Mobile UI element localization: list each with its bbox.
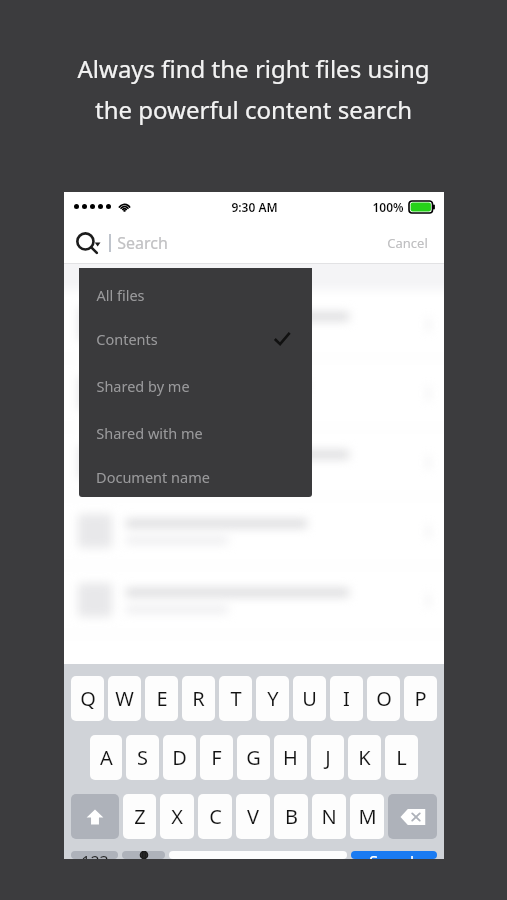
staticText: W	[115, 685, 134, 712]
other: Search scope	[75, 230, 101, 256]
button[interactable]: Z	[123, 794, 156, 839]
staticText: Y	[267, 685, 279, 712]
button[interactable]: Search	[351, 851, 437, 859]
button[interactable]: Change keyboard language	[122, 851, 165, 859]
button[interactable]: C	[198, 794, 232, 839]
staticText: S	[137, 744, 148, 771]
staticText: X	[171, 803, 183, 830]
staticText: 100%	[372, 199, 404, 215]
button[interactable]: B	[274, 794, 308, 839]
button[interactable]: Q	[71, 676, 104, 721]
staticText: Always find the right files using	[77, 52, 430, 85]
staticText: Shared by me	[96, 376, 190, 396]
staticText: Z	[134, 803, 146, 830]
button[interactable]: G	[237, 735, 270, 780]
staticText: Search	[117, 232, 168, 254]
staticText: the powerful content search	[95, 93, 412, 126]
button[interactable]: N	[312, 794, 346, 839]
staticText: All files	[96, 285, 145, 305]
button[interactable]: space	[169, 851, 347, 859]
button[interactable]: All files	[79, 268, 312, 315]
staticText: L	[396, 744, 407, 771]
button[interactable]: Y	[256, 676, 289, 721]
button[interactable]: Shared by me	[79, 362, 312, 409]
staticText: K	[358, 744, 371, 771]
button[interactable]: P	[404, 676, 437, 721]
button[interactable]: J	[311, 735, 344, 780]
button[interactable]: W	[108, 676, 141, 721]
button[interactable]: Contents	[79, 315, 312, 362]
button[interactable]: D	[163, 735, 196, 780]
button[interactable]: R	[182, 676, 215, 721]
staticText: U	[302, 685, 317, 712]
button[interactable]: U	[293, 676, 326, 721]
staticText: D	[172, 744, 187, 771]
staticText: F	[211, 744, 222, 771]
button[interactable]: Document name	[79, 456, 312, 497]
button[interactable]: S	[126, 735, 159, 780]
staticText: E	[156, 685, 168, 712]
button[interactable]: E	[145, 676, 178, 721]
button[interactable]: F	[200, 735, 233, 780]
button[interactable]: I	[330, 676, 363, 721]
button[interactable]: X	[160, 794, 194, 839]
staticText: 9:30 AM	[231, 199, 278, 215]
staticText: Shared with me	[96, 423, 203, 443]
staticText: H	[283, 744, 298, 771]
staticText: Contents	[96, 329, 158, 349]
staticText: J	[325, 744, 331, 771]
button[interactable]: H	[274, 735, 307, 780]
button[interactable]: M	[350, 794, 384, 839]
staticText: O	[376, 685, 392, 712]
staticText: 123	[81, 851, 109, 859]
staticText: P	[414, 685, 427, 712]
staticText: N	[321, 803, 337, 830]
button[interactable]: L	[385, 735, 418, 780]
button[interactable]: Search scope	[75, 230, 168, 256]
staticText: M	[358, 803, 377, 830]
button[interactable]: T	[219, 676, 252, 721]
staticText: R	[192, 685, 205, 712]
button[interactable]: K	[348, 735, 381, 780]
button[interactable]: Cancel	[383, 230, 432, 256]
staticText: Document name	[96, 467, 210, 487]
button[interactable]: V	[236, 794, 270, 839]
staticText: Q	[80, 685, 96, 712]
staticText: Search	[369, 851, 420, 859]
staticText: G	[246, 744, 261, 771]
button[interactable]: 123	[71, 851, 118, 859]
button[interactable]: Shared with me	[79, 409, 312, 456]
staticText: T	[230, 685, 242, 712]
staticText: V	[247, 803, 259, 830]
staticText: C	[209, 803, 222, 830]
staticText: I	[343, 685, 350, 712]
button[interactable]: Shift	[71, 794, 119, 839]
button[interactable]: Backspace	[388, 794, 437, 839]
staticText: B	[285, 803, 298, 830]
button[interactable]: A	[90, 735, 122, 780]
staticText: Cancel	[387, 234, 428, 252]
button[interactable]: O	[367, 676, 400, 721]
staticText: A	[100, 744, 113, 771]
